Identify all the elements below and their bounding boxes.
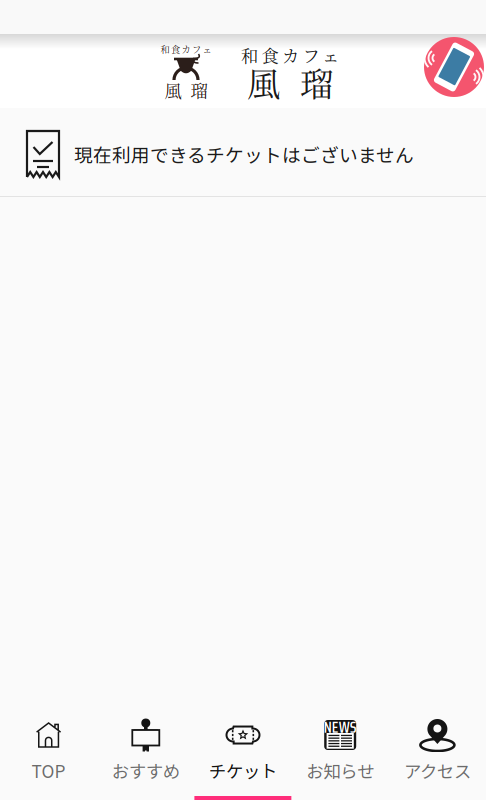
staticText: おすすめ [112,758,180,783]
button[interactable]: Shake to use ticket [424,37,484,97]
button[interactable]: TOP [0,705,97,800]
staticText: アクセス [404,758,471,783]
staticText: 現在利用できるチケットはございません [74,140,414,167]
staticText: NEWS [324,715,357,739]
button[interactable]: おすすめ [97,705,194,800]
button[interactable]: チケット [194,705,292,800]
button[interactable]: アクセス [389,705,486,800]
staticText: 風瑠 [164,77,207,102]
staticText: 和食カフェ [241,42,339,67]
button[interactable]: NEWS [292,705,389,800]
staticText: チケット [209,758,277,783]
staticText: 和食カフェ [160,42,211,56]
staticText: 風瑠 [247,58,333,106]
staticText: TOP [32,758,66,783]
staticText: お知らせ [306,758,374,783]
